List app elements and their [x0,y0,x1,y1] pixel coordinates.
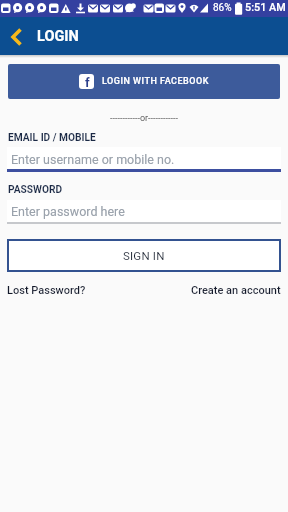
button[interactable]: Create an account [191,284,281,297]
staticText: 86% [213,2,232,14]
button[interactable]: Enter username or mobile no. [7,147,281,171]
staticText: 5:51 AM [245,1,286,14]
button[interactable]: Lost Password? [7,284,86,297]
staticText: Enter username or mobile no. [11,152,175,167]
button[interactable]: f [8,64,280,99]
staticText: f [85,75,90,89]
staticText: PASSWORD [8,184,63,196]
button[interactable]: SIGN IN [7,239,281,272]
button[interactable]: Enter password here [7,200,281,223]
staticText: Enter password here [11,204,125,219]
staticText: EMAIL ID / MOBILE [8,132,96,144]
staticText: ------------or------------ [0,113,288,124]
staticText: LOGIN [37,28,79,45]
staticText: LOGIN WITH FACEBOOK [102,76,209,87]
staticText: SIGN IN [123,249,165,262]
